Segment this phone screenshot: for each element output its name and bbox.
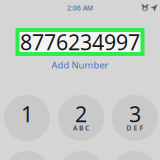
staticText: Add Number (51, 59, 108, 71)
staticText: 8776234997 (20, 28, 140, 56)
staticText: D E F (126, 124, 143, 132)
button[interactable]: 6 (112, 151, 158, 160)
button[interactable]: 3 (112, 95, 158, 141)
staticText: 3 (129, 100, 141, 128)
staticText: 2:06 AM (67, 4, 93, 12)
button[interactable]: Add Number (48, 59, 112, 71)
staticText: 2 (75, 100, 87, 128)
button[interactable]: 8776234997 (15, 28, 144, 56)
button[interactable]: 2 (58, 95, 104, 141)
staticText: A B C (73, 124, 89, 132)
staticText: 1 (21, 100, 33, 128)
button[interactable]: 4 (4, 151, 50, 160)
button[interactable]: 1 (4, 95, 50, 141)
button[interactable]: 5 (58, 151, 104, 160)
